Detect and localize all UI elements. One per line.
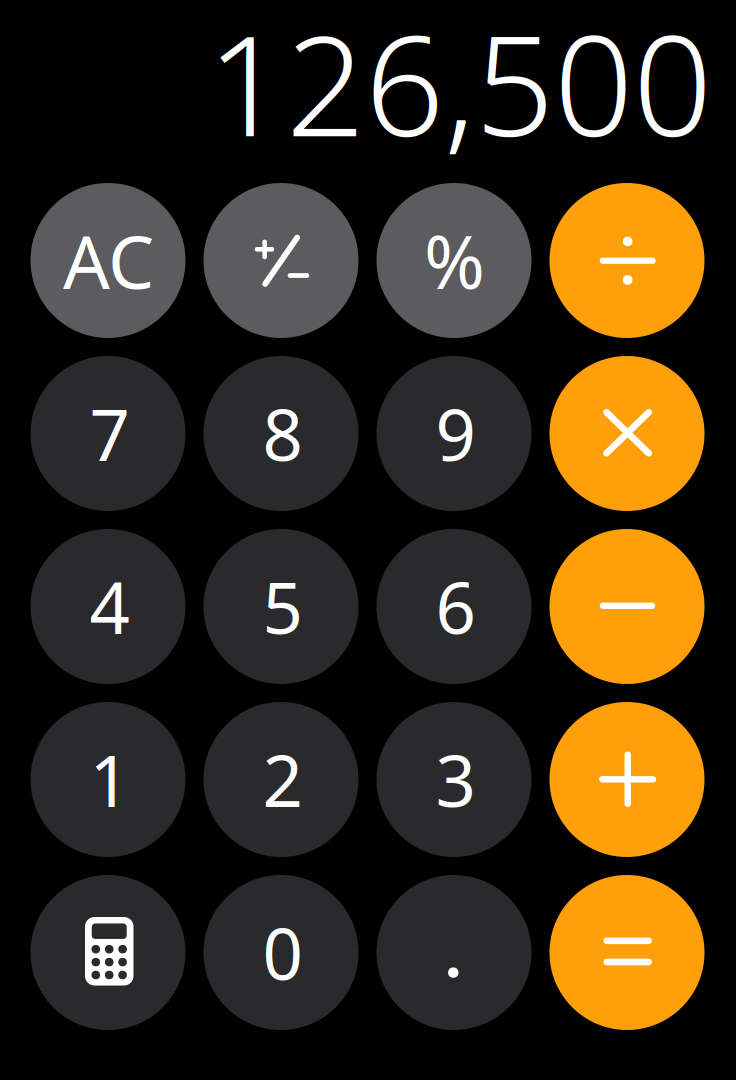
staticText: % <box>424 212 485 309</box>
button[interactable]: Divide <box>549 183 704 338</box>
staticText: 5 <box>262 560 302 653</box>
button[interactable]: % <box>376 183 531 338</box>
button[interactable]: 0 <box>203 875 358 1030</box>
button[interactable]: 9 <box>376 356 531 511</box>
button[interactable]: Calculator <box>30 875 185 1030</box>
button[interactable]: Plus minus <box>203 183 358 338</box>
staticText: 2 <box>262 733 302 826</box>
button[interactable]: Multiply <box>549 356 704 511</box>
button[interactable]: 5 <box>203 529 358 684</box>
button[interactable]: AC <box>30 183 185 338</box>
button[interactable]: 3 <box>376 702 531 857</box>
button[interactable]: 4 <box>30 529 185 684</box>
staticText: 4 <box>89 560 129 653</box>
button[interactable]: 6 <box>376 529 531 684</box>
staticText: 0 <box>262 906 302 999</box>
button[interactable]: 8 <box>203 356 358 511</box>
button[interactable]: Equals <box>549 875 704 1030</box>
staticText: 6 <box>435 560 475 653</box>
button[interactable]: Subtract <box>549 529 704 684</box>
staticText: 7 <box>89 387 129 480</box>
button[interactable]: Decimal point <box>376 875 531 1030</box>
staticText: 126,500 <box>207 0 712 174</box>
staticText: 8 <box>262 387 302 480</box>
button[interactable]: 2 <box>203 702 358 857</box>
staticText: AC <box>63 212 154 309</box>
button[interactable]: 1 <box>30 702 185 857</box>
staticText: 1 <box>89 733 129 826</box>
button[interactable]: 7 <box>30 356 185 511</box>
button[interactable]: Add <box>549 702 704 857</box>
staticText: 9 <box>435 387 475 480</box>
staticText: 3 <box>435 733 475 826</box>
